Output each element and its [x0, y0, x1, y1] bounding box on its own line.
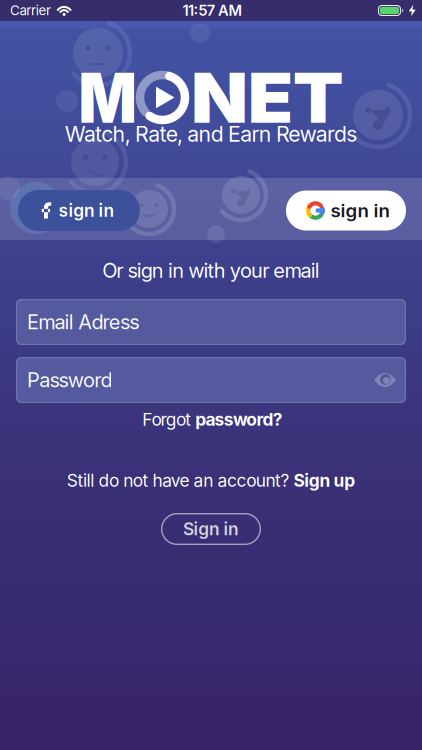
staticText: Password	[27, 368, 112, 392]
staticText: M	[74, 57, 140, 138]
staticText: Or sign in with your email	[102, 259, 320, 282]
button[interactable]: Show password	[373, 371, 397, 388]
staticText: Carrier	[10, 3, 51, 18]
staticText: Still do not have an account?	[67, 470, 290, 491]
button[interactable]: Sign in with Facebook	[18, 190, 140, 231]
button[interactable]: Sign in	[161, 513, 261, 545]
staticText: Watch, Rate, and Earn Rewards	[65, 121, 357, 147]
button[interactable]: Sign up	[294, 470, 355, 491]
staticText: Email Adress	[27, 310, 139, 334]
staticText: Sign up	[294, 470, 355, 491]
staticText: sign in	[59, 200, 114, 221]
staticText: NET	[196, 57, 339, 138]
staticText: sign in	[330, 199, 389, 221]
button[interactable]: Forgot	[142, 409, 283, 430]
button[interactable]: Sign in with Google	[286, 190, 406, 230]
staticText: Sign in	[183, 519, 239, 539]
button[interactable]: Email Adress	[16, 299, 406, 345]
button[interactable]: Password	[16, 357, 406, 403]
staticText: password?	[195, 409, 283, 430]
staticText: Forgot	[142, 409, 191, 430]
staticText: 11:57 AM	[182, 2, 243, 19]
